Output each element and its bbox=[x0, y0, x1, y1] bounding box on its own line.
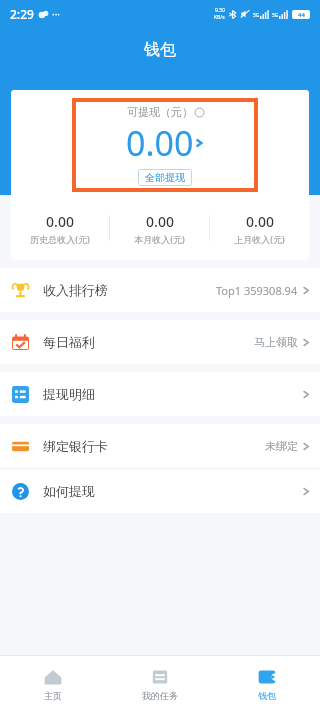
button[interactable]: 0.00 bbox=[11, 212, 109, 245]
button[interactable]: 0.00 bbox=[210, 212, 309, 245]
staticText: ··· bbox=[52, 7, 61, 21]
staticText: 0.00 bbox=[146, 212, 174, 231]
staticText: 未绑定 bbox=[265, 439, 298, 453]
staticText: 全部提现 bbox=[145, 171, 185, 184]
button[interactable]: 可提现（元） bbox=[72, 98, 258, 192]
button[interactable]: 如何提现 bbox=[0, 469, 320, 513]
staticText: 5G bbox=[253, 12, 260, 19]
staticText: 马上领取 bbox=[254, 335, 298, 349]
staticText: Top1 359308.94 bbox=[216, 283, 298, 298]
staticText: 钱包 bbox=[144, 40, 176, 60]
staticText: 0.00 bbox=[46, 212, 74, 231]
other: Help bbox=[195, 108, 204, 117]
staticText: 我的任务 bbox=[142, 690, 178, 701]
staticText: 每日福利 bbox=[43, 334, 95, 350]
button[interactable]: 钱包 bbox=[213, 656, 320, 711]
staticText: 如何提现 bbox=[43, 483, 95, 499]
staticText: 上月收入(元) bbox=[234, 233, 285, 245]
staticText: 收入排行榜 bbox=[43, 282, 108, 298]
button[interactable]: 提现明细 bbox=[0, 372, 320, 416]
staticText: KB/s bbox=[214, 14, 225, 21]
button[interactable]: 主页 bbox=[0, 656, 106, 711]
button[interactable]: 绑定银行卡 bbox=[0, 424, 320, 468]
staticText: 主页 bbox=[44, 690, 62, 701]
staticText: 绑定银行卡 bbox=[43, 438, 108, 454]
button[interactable]: 0.00 bbox=[110, 212, 209, 245]
staticText: 历史总收入(元) bbox=[30, 233, 90, 245]
staticText: 0.00 bbox=[246, 212, 274, 231]
staticText: 5G bbox=[272, 12, 279, 19]
staticText: 0.00 bbox=[126, 120, 194, 166]
staticText: 本月收入(元) bbox=[134, 233, 185, 245]
button[interactable]: 我的任务 bbox=[106, 656, 213, 711]
staticText: 钱包 bbox=[258, 690, 276, 701]
button[interactable]: 全部提现 bbox=[145, 171, 185, 184]
button[interactable]: 每日福利 bbox=[0, 320, 320, 364]
staticText: 可提现（元） bbox=[127, 105, 193, 119]
staticText: 44 bbox=[298, 11, 305, 19]
staticText: 提现明细 bbox=[43, 386, 95, 402]
button[interactable]: 收入排行榜 bbox=[0, 268, 320, 312]
staticText: 2:29 bbox=[10, 6, 34, 22]
staticText: 9.50 bbox=[215, 7, 225, 14]
